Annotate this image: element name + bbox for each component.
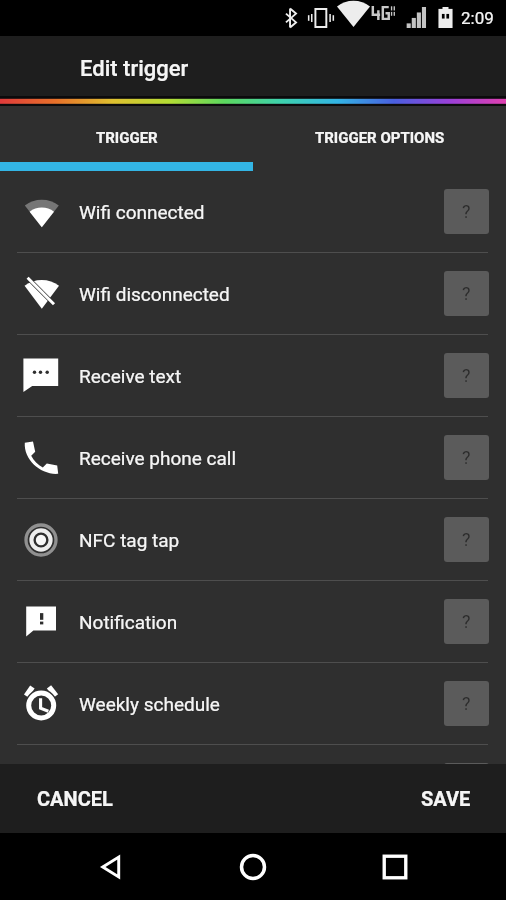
button[interactable]: NFC tag tap [0,499,506,580]
staticText: ? [462,283,471,304]
staticText: Edit trigger [80,56,189,82]
staticText: Wifi disconnected [79,283,230,305]
button[interactable]: Help [444,353,489,398]
button[interactable]: CANCEL [0,771,150,826]
button[interactable]: TRIGGER [0,106,253,171]
button[interactable]: Back [82,837,142,897]
staticText: ? [462,529,471,550]
button[interactable]: Wifi disconnected [0,253,506,334]
button[interactable]: Notification [0,581,506,662]
button[interactable]: Wifi connected [0,171,506,252]
staticText: 2:09 [461,8,494,28]
button[interactable]: SAVE [386,771,506,826]
button[interactable]: Weekly schedule [0,663,506,744]
staticText: SAVE [421,787,471,810]
button[interactable]: Home [223,837,283,897]
staticText: NFC tag tap [79,529,180,551]
staticText: ? [462,201,471,222]
button[interactable]: Receive phone call [0,417,506,498]
staticText: CANCEL [37,787,113,810]
button[interactable]: Receive text [0,335,506,416]
button[interactable]: Recents [365,837,425,897]
staticText: ? [462,365,471,386]
staticText: Wifi connected [79,201,205,223]
button[interactable]: Help [444,517,489,562]
button[interactable]: Help [444,599,489,644]
button[interactable]: Help [444,271,489,316]
staticText: TRIGGER OPTIONS [315,129,445,147]
staticText: ? [462,693,471,714]
button[interactable]: Help [444,435,489,480]
staticText: ? [462,611,471,632]
button[interactable]: TRIGGER OPTIONS [253,106,506,171]
button[interactable]: Help [444,681,489,726]
staticText: Receive text [79,365,182,387]
staticText: Notification [79,611,178,633]
staticText: Receive phone call [79,447,237,469]
button[interactable]: Help [444,763,489,764]
staticText: Weekly schedule [79,693,220,715]
staticText: TRIGGER [96,129,158,147]
staticText: ? [462,447,471,468]
button[interactable]: Help [444,189,489,234]
